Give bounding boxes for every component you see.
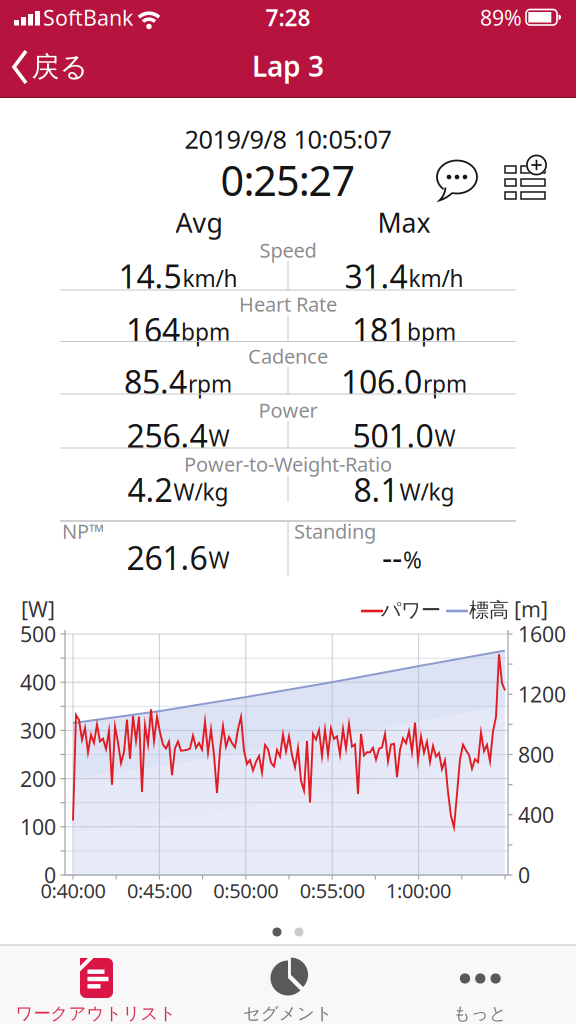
staticText: bpm (407, 317, 456, 347)
button[interactable]: 戻る (4, 42, 100, 92)
staticText: 1200 (518, 680, 566, 708)
staticText: 164 (126, 308, 180, 351)
staticText: 400 (518, 801, 554, 829)
staticText: Standing (294, 518, 376, 544)
staticText: 1600 (518, 620, 566, 648)
staticText: bpm (181, 317, 230, 347)
staticText: W (434, 423, 455, 453)
staticText: パワー (381, 598, 441, 622)
staticText: % (403, 545, 422, 575)
staticText: Power-to-Weight-Ratio (184, 451, 392, 477)
staticText: W (208, 545, 229, 575)
staticText: 85.4 (124, 360, 187, 403)
staticText: 戻る (31, 50, 88, 84)
staticText: 1:00:00 (386, 877, 451, 904)
staticText: rpm (188, 369, 232, 399)
staticText: -- (382, 536, 402, 579)
staticText: 0:40:00 (40, 877, 105, 904)
button[interactable]: コメント (433, 158, 481, 204)
button[interactable]: ワークアウトリスト (0, 945, 192, 1024)
staticText: Heart Rate (239, 291, 337, 317)
staticText: km/h (182, 263, 237, 293)
staticText: 2019/9/8 10:05:07 (184, 122, 391, 156)
staticText: 89% (480, 3, 522, 32)
staticText: 14.5 (118, 255, 181, 297)
staticText: 261.6 (126, 536, 207, 579)
staticText: 0:50:00 (213, 877, 278, 904)
button[interactable]: ラップ追加 (502, 157, 548, 203)
staticText: Speed (259, 237, 316, 263)
staticText: Lap 3 (252, 47, 324, 85)
staticText: 8.1 (353, 468, 398, 511)
staticText: 400 (20, 668, 56, 696)
staticText: SoftBank (43, 3, 133, 32)
staticText: 7:28 (265, 2, 310, 32)
staticText: 501.0 (352, 414, 433, 457)
staticText: 181 (352, 308, 406, 351)
staticText: 100 (20, 813, 56, 841)
staticText: Avg (175, 205, 222, 240)
button[interactable]: もっと (384, 945, 576, 1024)
staticText: 256.4 (126, 414, 207, 457)
staticText: 31.4 (344, 255, 407, 297)
staticText: km/h (408, 263, 463, 293)
staticText: Max (377, 205, 430, 240)
staticText: 4.2 (127, 468, 172, 511)
staticText: 800 (518, 740, 554, 769)
staticText: 0:45:00 (127, 877, 192, 904)
staticText: Power (258, 397, 317, 423)
staticText: 106.0 (341, 360, 422, 403)
staticText: 500 (20, 620, 56, 648)
staticText: 0 (44, 861, 56, 889)
staticText: [m] (514, 595, 548, 623)
button[interactable]: セグメント (192, 945, 384, 1024)
staticText: ワークアウトリスト (15, 1003, 176, 1024)
staticText: 0:25:27 (221, 153, 355, 207)
staticText: 200 (20, 764, 56, 793)
staticText: W/kg (399, 477, 454, 507)
staticText: Cadence (248, 343, 328, 369)
staticText: [W] (21, 595, 55, 623)
staticText: 300 (20, 716, 56, 744)
staticText: W/kg (173, 477, 228, 507)
staticText: 標高 (469, 598, 509, 622)
staticText: もっと (453, 1003, 507, 1024)
staticText: W (208, 423, 229, 453)
staticText: rpm (423, 369, 467, 399)
staticText: 0:55:00 (300, 877, 365, 904)
staticText: 0 (518, 861, 530, 889)
staticText: セグメント (243, 1003, 333, 1024)
staticText: NP™ (62, 518, 104, 544)
